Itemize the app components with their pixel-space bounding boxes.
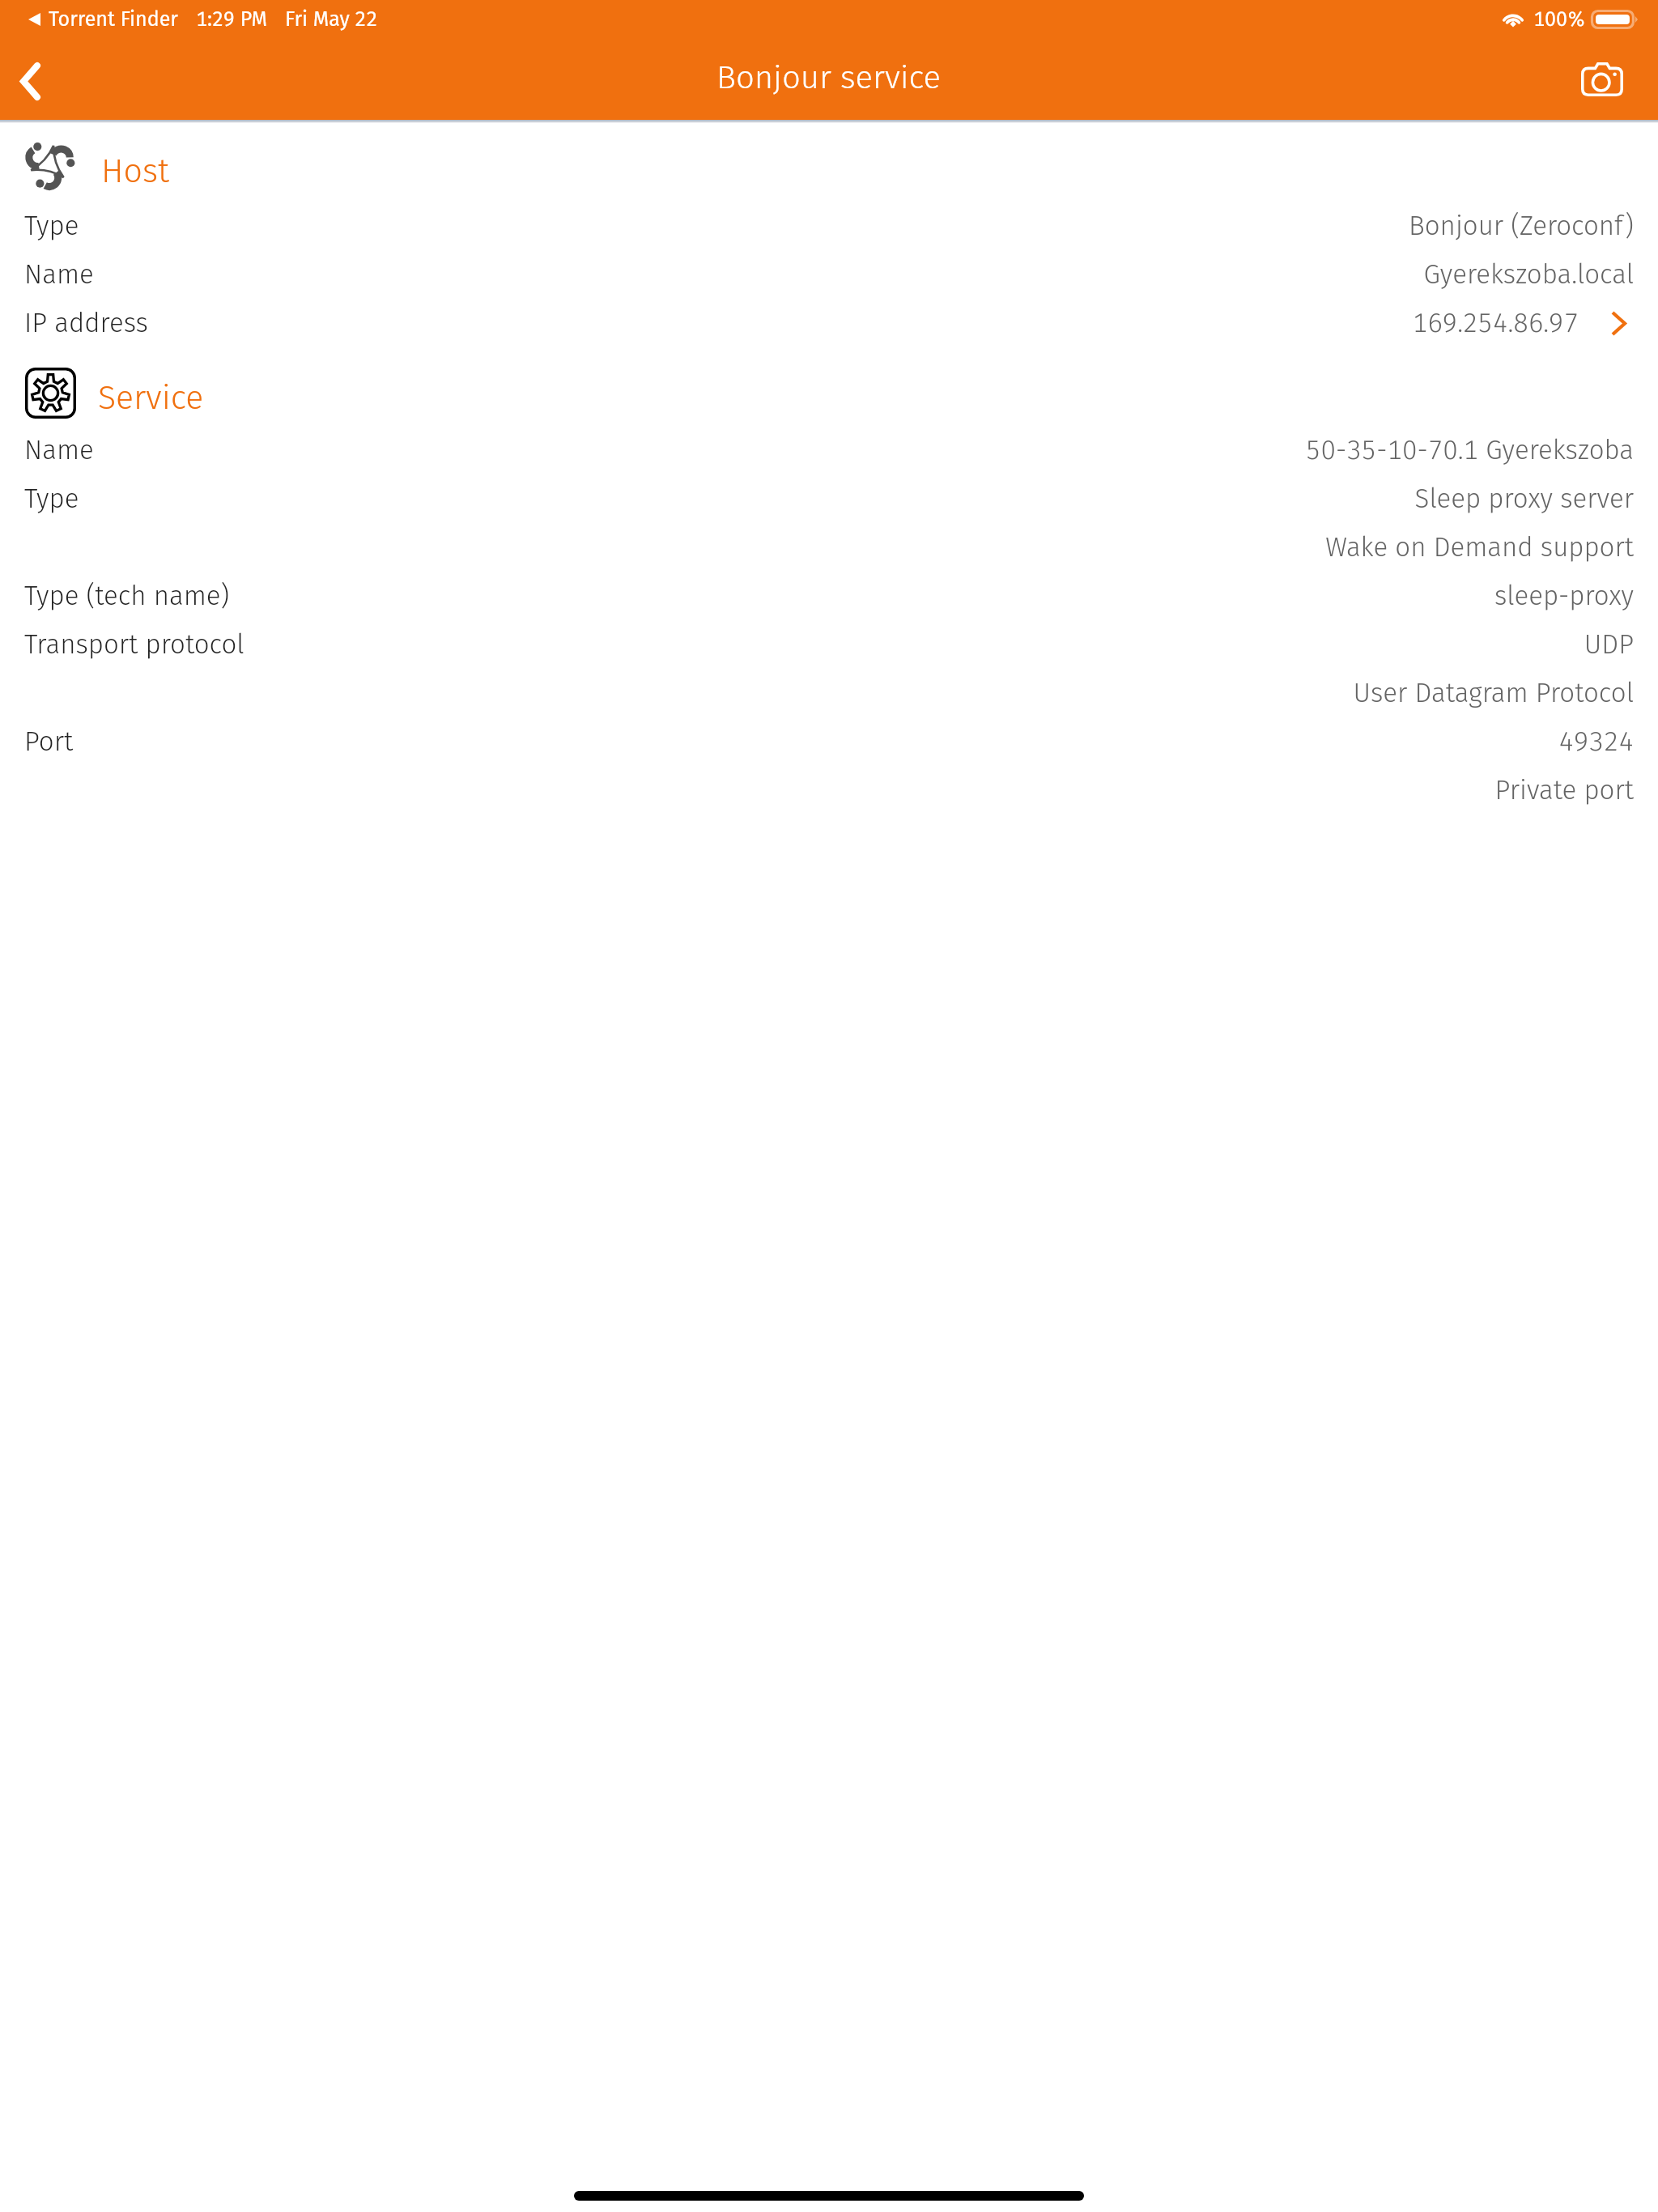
staticText: User Datagram Protocol: [1353, 677, 1634, 709]
staticText: Fri May 22: [285, 7, 378, 32]
button[interactable]: Service: [0, 364, 1658, 426]
staticText: UDP: [1584, 628, 1634, 661]
button[interactable]: Private port: [0, 766, 1658, 815]
staticText: Sleep proxy server: [1414, 483, 1634, 515]
staticText: IP address: [24, 307, 148, 339]
button[interactable]: Wake on Demand support: [0, 523, 1658, 572]
staticText: Name: [24, 258, 94, 291]
button[interactable]: User Datagram Protocol: [0, 669, 1658, 717]
staticText: Private port: [1494, 774, 1634, 806]
staticText: Bonjour service: [716, 58, 942, 97]
button[interactable]: Camera: [1546, 40, 1658, 118]
button[interactable]: Type: [0, 202, 1658, 250]
staticText: 50-35-10-70.1 Gyerekszoba: [1306, 434, 1634, 466]
staticText: Service: [98, 378, 204, 418]
staticText: Name: [24, 434, 94, 466]
button[interactable]: Name: [0, 250, 1658, 299]
button[interactable]: Host: [0, 140, 1658, 202]
staticText: Type (tech name): [24, 580, 230, 612]
staticText: Torrent Finder: [49, 7, 178, 32]
button[interactable]: Transport protocol: [0, 620, 1658, 669]
button[interactable]: Back: [0, 42, 81, 120]
button[interactable]: Port: [0, 717, 1658, 766]
staticText: Bonjour (Zeroconf): [1409, 210, 1634, 242]
staticText: Type: [24, 483, 79, 515]
staticText: Transport protocol: [24, 628, 244, 661]
staticText: sleep-proxy: [1494, 580, 1634, 612]
staticText: Port: [24, 725, 74, 758]
staticText: 169.254.86.97: [1412, 307, 1579, 339]
button[interactable]: Name: [0, 426, 1658, 474]
staticText: Wake on Demand support: [1325, 531, 1634, 564]
button[interactable]: Type: [0, 474, 1658, 523]
staticText: 49324: [1558, 725, 1634, 758]
staticText: Gyerekszoba.local: [1423, 258, 1634, 291]
staticText: Type: [24, 210, 79, 242]
staticText: Host: [101, 151, 169, 191]
button[interactable]: Type (tech name): [0, 572, 1658, 620]
button[interactable]: IP address: [0, 299, 1658, 347]
staticText: 1:29 PM: [196, 7, 267, 32]
staticText: 100%: [1533, 7, 1586, 32]
